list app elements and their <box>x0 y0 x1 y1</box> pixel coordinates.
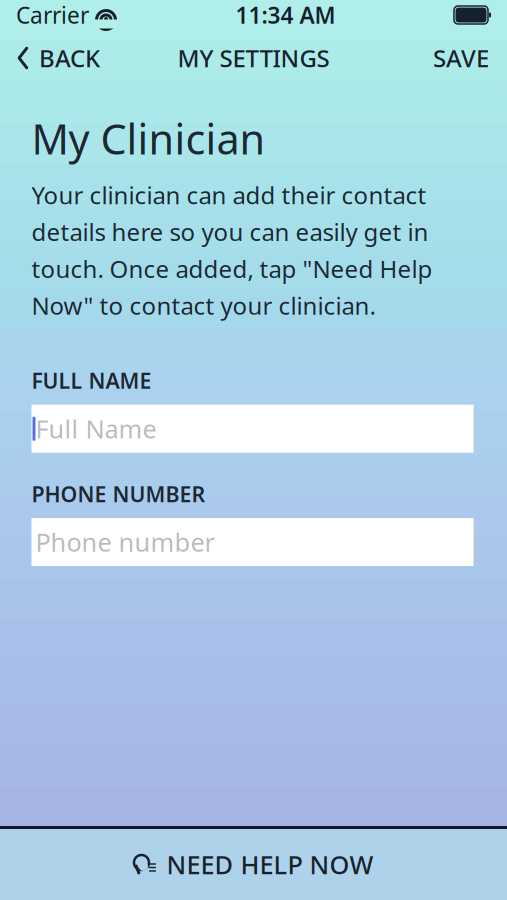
staticText: MY SETTINGS <box>177 42 329 74</box>
staticText: Full Name <box>35 412 156 445</box>
staticText: Carrier <box>16 0 89 30</box>
button[interactable]: BACK <box>0 38 116 78</box>
staticText: FULL NAME <box>31 366 151 395</box>
button[interactable]: SAVE <box>415 38 507 78</box>
staticText: BACK <box>39 42 100 74</box>
staticText: NEED HELP NOW <box>166 848 373 881</box>
staticText: SAVE <box>433 42 489 74</box>
staticText <box>89 0 95 30</box>
staticText: PHONE NUMBER <box>31 480 205 508</box>
button[interactable]: NEED HELP NOW <box>0 829 507 900</box>
staticText: 11:34 AM <box>235 0 335 30</box>
staticText: Your clinician can add their contact det… <box>31 179 432 321</box>
staticText: My Clinician <box>31 111 265 166</box>
staticText: Phone number <box>35 525 214 559</box>
